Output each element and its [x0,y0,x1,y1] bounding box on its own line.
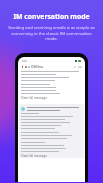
button[interactable]: Back [20,65,24,69]
staticText: View full message [21,154,47,158]
button[interactable]: View full message [21,96,47,100]
button[interactable]: View full message [21,154,47,158]
staticText: View full message [21,96,47,100]
staticText: IM conversation mode [13,12,90,21]
staticText: O365nu [31,65,43,69]
staticText: Sending and receiving emails is as simpl… [6,25,97,41]
